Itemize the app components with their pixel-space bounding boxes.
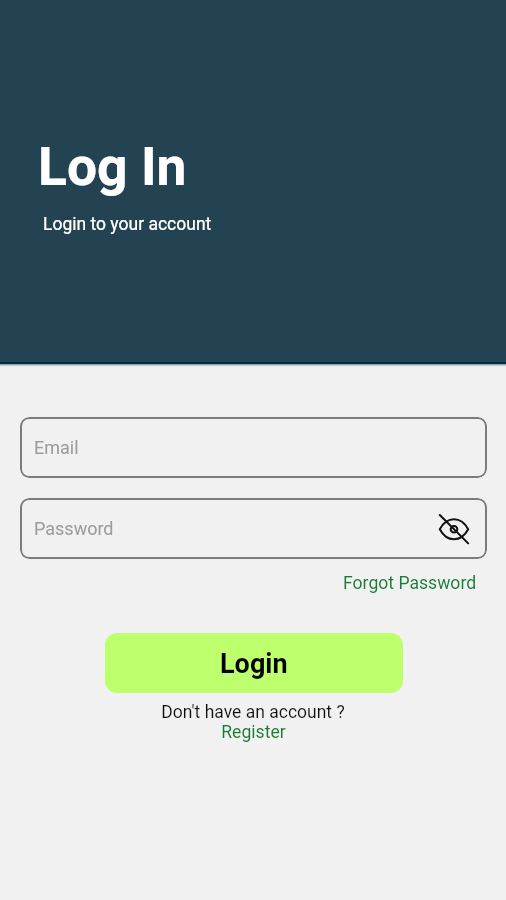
button[interactable]: Show password <box>437 512 471 546</box>
button[interactable]: Login <box>105 633 403 693</box>
staticText: Login <box>220 648 288 680</box>
button[interactable]: Register <box>211 716 296 749</box>
staticText: Forgot Password <box>343 573 477 594</box>
staticText: Register <box>221 722 286 743</box>
staticText: Log In <box>38 135 187 198</box>
staticText: Login to your account <box>43 214 212 235</box>
staticText: Don't have an account ? <box>161 702 345 723</box>
staticText: Email <box>34 437 79 458</box>
button[interactable]: Password <box>20 498 487 559</box>
button[interactable]: Email <box>20 417 487 478</box>
button[interactable]: Forgot Password <box>337 567 483 600</box>
staticText: Password <box>34 518 114 539</box>
